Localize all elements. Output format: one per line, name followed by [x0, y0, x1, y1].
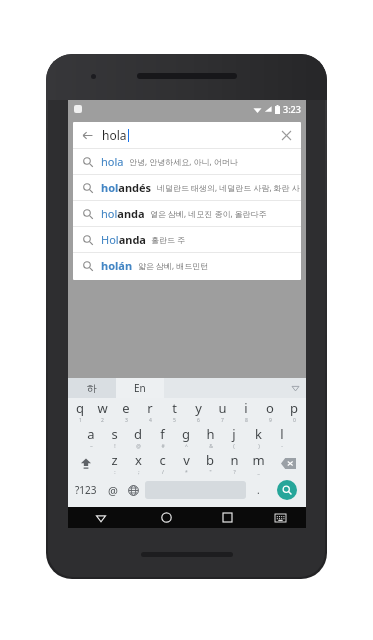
staticText: * [185, 469, 188, 476]
button[interactable]: Change language [123, 476, 143, 504]
button[interactable]: y [186, 398, 210, 424]
button[interactable]: m [246, 450, 270, 476]
button[interactable]: Switch keyboard [255, 507, 306, 528]
button[interactable]: Backspace [270, 450, 306, 476]
staticText: l [280, 425, 284, 443]
staticText: n [230, 451, 239, 469]
staticText: - [281, 443, 283, 450]
staticText: ^ [185, 443, 188, 450]
staticText: 3 [125, 417, 128, 424]
staticText: i [244, 399, 248, 417]
button[interactable]: b [198, 450, 222, 476]
button[interactable]: Holanda [73, 227, 301, 252]
button[interactable]: o [258, 398, 282, 424]
staticText: t [172, 399, 177, 417]
staticText: a [87, 425, 95, 443]
staticText: holán [101, 258, 133, 273]
staticText: ?123 [75, 483, 97, 497]
staticText: 네덜란드 태생의, 네덜란드 사람, 화란 사람,.. [157, 182, 301, 193]
button[interactable]: d [126, 424, 150, 450]
button[interactable]: j [222, 424, 246, 450]
button[interactable]: 하 [68, 378, 116, 398]
button[interactable]: k [246, 424, 270, 450]
button[interactable]: @ [103, 476, 123, 504]
staticText: d [134, 425, 142, 443]
button[interactable]: a [79, 424, 102, 450]
staticText: hola [102, 127, 127, 143]
button[interactable]: f [150, 424, 174, 450]
staticText: 3:23 [283, 103, 301, 115]
staticText: ? [233, 469, 236, 476]
staticText: o [266, 399, 274, 417]
staticText: " [209, 469, 212, 476]
button[interactable]: Hide [284, 378, 306, 398]
button[interactable]: ?123 [68, 476, 103, 504]
staticText: g [182, 425, 190, 443]
staticText: f [160, 425, 165, 443]
staticText: ) [258, 443, 260, 450]
staticText: holandés [101, 180, 152, 195]
staticText: @ [136, 443, 141, 450]
staticText: r [147, 399, 153, 417]
button[interactable]: hola [73, 149, 301, 174]
button[interactable]: z [103, 450, 126, 476]
staticText: q [76, 399, 84, 417]
button[interactable]: c [150, 450, 174, 476]
staticText: / [162, 469, 164, 476]
button[interactable]: e [114, 398, 138, 424]
staticText: c [159, 451, 166, 469]
staticText: 얇은 삼베, 배드민턴 [138, 260, 209, 271]
button[interactable]: Shift [68, 450, 103, 476]
staticText: z [111, 451, 118, 469]
button[interactable]: t [162, 398, 186, 424]
button[interactable]: Back [80, 128, 94, 142]
button[interactable]: r [138, 398, 162, 424]
staticText: ! [114, 443, 116, 450]
staticText: 9 [269, 417, 272, 424]
button[interactable]: w [91, 398, 114, 424]
button[interactable]: Back [68, 507, 133, 528]
staticText: _ [257, 469, 260, 476]
button[interactable]: s [102, 424, 126, 450]
staticText: 안녕, 안녕하세요, 아니, 어머나 [129, 156, 238, 167]
staticText: 6 [197, 417, 200, 424]
button[interactable]: Clear [279, 128, 293, 142]
button[interactable]: . [248, 476, 268, 504]
button[interactable]: h [198, 424, 222, 450]
staticText: v [183, 451, 190, 469]
staticText: j [232, 425, 236, 443]
staticText: w [97, 399, 108, 417]
staticText: @ [108, 483, 118, 498]
button[interactable]: Home [133, 507, 199, 528]
button[interactable]: Search [277, 480, 297, 500]
staticText: : [114, 469, 116, 476]
staticText: s [111, 425, 118, 443]
staticText: 4 [149, 417, 152, 424]
button[interactable]: l [270, 424, 294, 450]
button[interactable]: v [174, 450, 198, 476]
button[interactable]: Back [73, 122, 301, 148]
button[interactable]: g [174, 424, 198, 450]
button[interactable]: Recents [199, 507, 255, 528]
staticText: k [255, 425, 262, 443]
staticText: p [290, 399, 298, 417]
button[interactable]: holán [73, 253, 301, 278]
staticText: 하 [87, 382, 97, 395]
button[interactable]: En [116, 378, 164, 398]
staticText: 홀란드 주 [151, 234, 186, 245]
button[interactable]: n [222, 450, 246, 476]
staticText: y [195, 399, 202, 417]
button[interactable]: holandés [73, 175, 301, 200]
staticText: . [257, 483, 260, 497]
button[interactable]: x [126, 450, 150, 476]
button[interactable]: i [234, 398, 258, 424]
staticText: x [135, 451, 142, 469]
button[interactable]: p [282, 398, 306, 424]
button[interactable]: q [68, 398, 91, 424]
button[interactable]: u [210, 398, 234, 424]
staticText: # [161, 443, 165, 450]
button[interactable]: holanda [73, 201, 301, 226]
staticText: hola [101, 154, 124, 169]
staticText: Holanda [101, 232, 146, 247]
